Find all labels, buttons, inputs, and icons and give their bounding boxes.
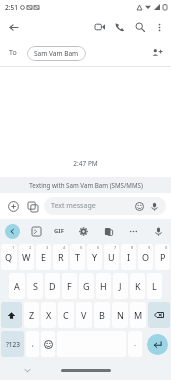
staticText: To [9,48,17,58]
button[interactable]: , [26,331,39,357]
staticText: S [33,280,38,292]
button[interactable]: Text message [44,197,166,215]
button[interactable]: I [121,244,136,270]
staticText: 2:51 [5,3,18,12]
staticText: 5 [80,245,83,250]
staticText: U [108,251,115,263]
staticText: 1 [12,245,15,250]
staticText: Sam Vam Bam [34,49,79,58]
staticText: . [134,339,136,349]
button[interactable]: T [70,244,85,270]
button[interactable]: F [62,273,77,299]
button[interactable]: Settings [75,223,91,239]
staticText: W [22,251,31,263]
button[interactable]: Q [1,244,17,270]
button[interactable]: GIF [52,223,66,239]
button[interactable]: Sam Vam Bam [27,46,86,61]
button[interactable]: B [94,302,110,328]
staticText: , [32,339,34,349]
staticText: 6 [97,245,100,250]
button[interactable]: M [130,302,146,328]
button[interactable]: Y [87,244,102,270]
button[interactable]: Backspace [148,302,170,328]
staticText: I [127,251,131,263]
staticText: P [160,251,166,263]
staticText: R [58,251,64,263]
button[interactable]: N [112,302,128,328]
button[interactable]: More options [150,18,168,36]
button[interactable]: E [36,244,51,270]
staticText: F [67,280,72,292]
button[interactable]: Enter [147,334,168,355]
button[interactable]: Stickers [28,223,44,239]
staticText: 7 [114,245,117,250]
staticText: 2 [29,245,32,250]
button[interactable]: O [138,244,153,270]
button[interactable]: Expand toolbar [5,224,20,239]
button[interactable]: Gallery [24,198,41,215]
staticText: V [81,309,87,321]
staticText: L [152,280,157,292]
staticText: M [134,309,143,321]
button[interactable]: ?123 [1,331,24,357]
staticText: 3 [46,245,49,250]
staticText: J [119,280,122,292]
staticText: O [142,251,150,263]
button[interactable]: Add people [148,44,166,62]
button[interactable]: Back [3,17,23,37]
button[interactable]: Search [130,17,150,37]
button[interactable]: W [19,244,34,270]
staticText: Texting with Sam Vam Bam (SMS/MMS) [29,181,143,189]
staticText: T [75,251,81,263]
staticText: X [46,309,52,321]
button[interactable]: Shift [1,302,22,328]
button[interactable]: X [41,302,56,328]
staticText: ?123 [6,340,20,349]
button[interactable]: More [125,223,141,239]
button[interactable]: Clipboard [100,223,116,239]
staticText: Z [29,309,35,321]
staticText: 0 [165,245,168,250]
staticText: H [100,280,107,292]
button[interactable]: S [27,273,43,299]
staticText: 2:47 PM [73,159,98,168]
button[interactable]: A [9,273,25,299]
button[interactable]: J [113,273,128,299]
button[interactable]: Video call [90,17,110,37]
staticText: G [83,280,90,292]
staticText: K [135,280,141,292]
button[interactable]: Z [24,302,39,328]
staticText: B [99,309,105,321]
button[interactable]: D [45,273,60,299]
staticText: Q [5,251,13,263]
button[interactable]: K [130,273,145,299]
button[interactable]: Emoji [41,331,55,357]
staticText: GIF [54,227,64,235]
button[interactable]: C [58,302,74,328]
button[interactable]: L [147,273,162,299]
button[interactable]: Voice input [150,223,166,239]
button[interactable]: V [76,302,92,328]
staticText: A [14,280,20,292]
button[interactable]: G [79,273,94,299]
staticText: 4 [63,245,66,250]
staticText: C [63,309,69,321]
staticText: E [41,251,47,263]
staticText: D [49,280,56,292]
staticText: 9 [148,245,151,250]
button[interactable]: . [128,331,142,357]
button[interactable]: R [53,244,68,270]
staticText: 8 [131,245,134,250]
button[interactable]: P [155,244,170,270]
staticText: Text message [51,201,135,211]
button[interactable]: Hide keyboard [20,363,34,377]
button[interactable]: U [104,244,119,270]
button[interactable]: Add attachment [5,198,22,215]
staticText: N [117,309,124,321]
button[interactable]: H [96,273,111,299]
staticText: Y [92,251,98,263]
button[interactable]: Call [110,17,130,37]
